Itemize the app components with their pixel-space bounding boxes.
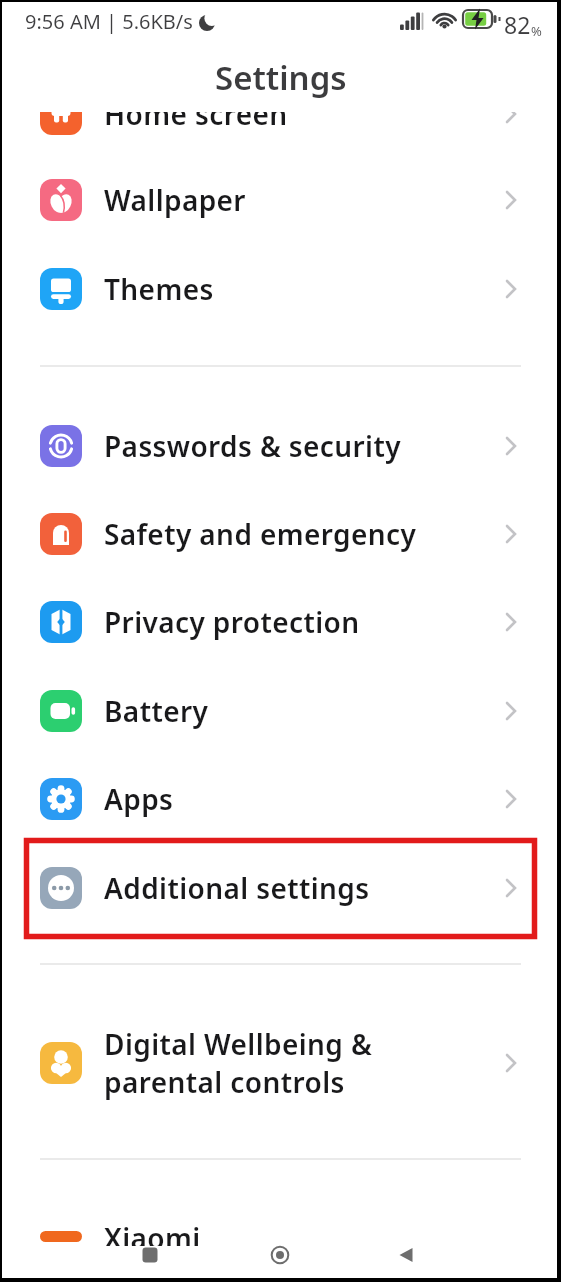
staticText: Safety and emergency	[104, 515, 417, 553]
staticText: Digital Wellbeing &	[104, 1025, 373, 1063]
staticText: Wallpaper	[104, 181, 246, 219]
button[interactable]: Apps	[0, 755, 561, 843]
staticText: parental controls	[104, 1063, 345, 1101]
staticText: Apps	[104, 780, 174, 818]
staticText: Privacy protection	[104, 603, 360, 641]
button[interactable]: Additional settings	[0, 844, 561, 932]
staticText: Xiaomi	[104, 1219, 201, 1246]
button[interactable]	[260, 1240, 300, 1270]
button[interactable]: Safety and emergency	[0, 490, 561, 578]
staticText: Passwords & security	[104, 427, 401, 465]
staticText: 9:56 AM | 5.6KB/s	[25, 8, 193, 35]
button[interactable]: Themes	[0, 245, 561, 333]
button[interactable]	[386, 1240, 426, 1270]
button[interactable]: Home screen	[0, 70, 561, 158]
button[interactable]: Privacy protection	[0, 578, 561, 666]
button[interactable]: Battery	[0, 667, 561, 755]
staticText: 82	[504, 9, 531, 40]
button[interactable]: Passwords & security	[0, 402, 561, 490]
staticText: Battery	[104, 692, 209, 730]
button[interactable]	[130, 1240, 170, 1270]
staticText: Additional settings	[104, 869, 370, 907]
staticText: Settings	[215, 55, 347, 100]
staticText: %	[531, 22, 542, 40]
staticText: Home screen	[104, 95, 288, 133]
button[interactable]: Digital Wellbeing &	[0, 1001, 561, 1125]
staticText: Themes	[104, 270, 214, 308]
button[interactable]: Wallpaper	[0, 156, 561, 244]
